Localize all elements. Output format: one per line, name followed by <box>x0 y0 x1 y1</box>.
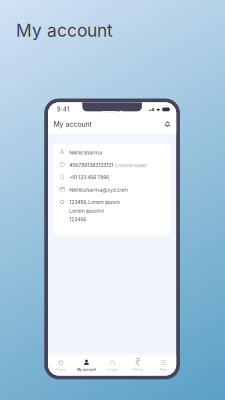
button[interactable]: ₹ <box>125 355 150 376</box>
button[interactable]: Notifications <box>162 119 173 130</box>
staticText: Lorem ipusmrl <box>69 208 104 214</box>
staticText: 9:41 <box>57 106 69 113</box>
button[interactable]: My account <box>74 355 99 376</box>
staticText: My account <box>54 120 92 128</box>
staticText: Home <box>56 367 66 372</box>
staticText: My account <box>16 20 113 41</box>
staticText: Usage <box>107 367 118 372</box>
staticText: 123456 <box>69 216 86 223</box>
staticText: More <box>159 367 167 372</box>
staticText: Billing <box>133 367 143 372</box>
staticText: ₹ <box>135 356 140 368</box>
staticText: 4567891383133131 <box>69 162 113 168</box>
button[interactable]: More <box>151 355 176 376</box>
staticText: +91 123 456 7890 <box>69 174 109 181</box>
staticText: 123456, Lorem ipusm <box>69 199 120 205</box>
button[interactable]: Usage <box>99 355 125 376</box>
staticText: Nikhil Sharma <box>69 149 102 156</box>
staticText: (Consumer number) <box>115 164 147 168</box>
staticText: Nikhil.sharma@xyz.com <box>69 187 128 193</box>
staticText: My account <box>77 367 96 372</box>
button[interactable]: Home <box>48 355 74 376</box>
